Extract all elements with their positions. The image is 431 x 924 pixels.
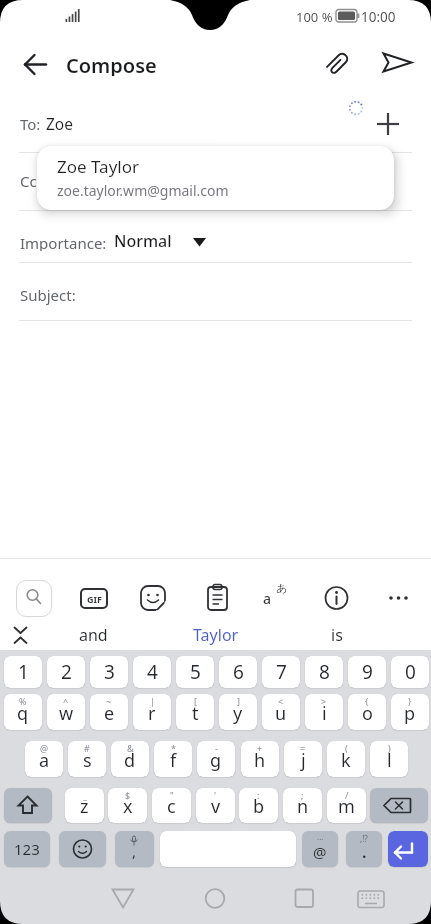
- button[interactable]: 123: [4, 831, 50, 867]
- staticText: 3: [104, 659, 115, 685]
- button[interactable]: @: [25, 741, 63, 777]
- button[interactable]: 1: [4, 656, 42, 688]
- button[interactable]: [260, 580, 296, 617]
- button[interactable]: [380, 580, 416, 617]
- button[interactable]: -: [197, 741, 235, 777]
- button[interactable]: [59, 831, 106, 867]
- button[interactable]: ': [196, 788, 235, 823]
- button[interactable]: +: [241, 741, 279, 777]
- button[interactable]: 0: [391, 656, 429, 688]
- staticText: GIF: [87, 593, 102, 605]
- button[interactable]: $: [108, 788, 147, 823]
- button[interactable]: ): [370, 741, 408, 777]
- button[interactable]: and: [60, 623, 126, 647]
- staticText: o: [362, 701, 373, 726]
- staticText: 123: [14, 839, 40, 859]
- button[interactable]: &: [111, 741, 149, 777]
- button[interactable]: (: [327, 741, 365, 777]
- button[interactable]: {: [348, 694, 386, 730]
- button[interactable]: [370, 788, 428, 823]
- button[interactable]: [103, 880, 143, 918]
- button[interactable]: ...: [302, 831, 338, 867]
- staticText: Compose: [66, 52, 157, 76]
- button[interactable]: 7: [262, 656, 300, 688]
- button[interactable]: <: [262, 694, 300, 730]
- button[interactable]: 4: [133, 656, 171, 688]
- staticText: x: [123, 794, 133, 819]
- button[interactable]: [135, 580, 171, 617]
- button[interactable]: }: [391, 694, 429, 730]
- staticText: j: [301, 748, 306, 773]
- button[interactable]: ,: [115, 831, 154, 867]
- button[interactable]: 5: [176, 656, 214, 688]
- button[interactable]: [15, 580, 51, 617]
- staticText: f: [170, 748, 177, 773]
- button[interactable]: [16, 580, 52, 617]
- staticText: 0: [405, 659, 416, 685]
- staticText: &: [127, 742, 134, 754]
- button[interactable]: ^: [47, 694, 85, 730]
- button[interactable]: [388, 831, 428, 867]
- button[interactable]: [16, 48, 52, 82]
- button[interactable]: 6: [219, 656, 257, 688]
- staticText: Cc/Bcc:: [20, 171, 38, 191]
- staticText: w: [59, 701, 74, 726]
- staticText: h: [254, 748, 266, 773]
- button[interactable]: [195, 880, 235, 918]
- button[interactable]: :: [239, 788, 278, 823]
- staticText: v: [211, 794, 221, 819]
- staticText: p: [404, 701, 416, 726]
- staticText: m: [338, 794, 355, 819]
- button[interactable]: GIF: [80, 588, 108, 609]
- button[interactable]: Zoe Taylor: [37, 146, 394, 210]
- staticText: ]: [237, 695, 240, 707]
- button[interactable]: ~: [90, 694, 128, 730]
- button[interactable]: /: [327, 788, 366, 823]
- button[interactable]: 9: [348, 656, 386, 688]
- button[interactable]: Normal: [114, 230, 184, 252]
- button[interactable]: [76, 580, 112, 617]
- staticText: r: [148, 701, 156, 726]
- button[interactable]: 3: [90, 656, 128, 688]
- staticText: Zoe Taylor: [57, 155, 140, 178]
- staticText: l: [387, 748, 392, 773]
- staticText: ": [170, 789, 174, 801]
- button[interactable]: Taylor: [180, 623, 252, 647]
- button[interactable]: [: [176, 694, 214, 730]
- button[interactable]: ;: [283, 788, 322, 823]
- button[interactable]: |: [133, 694, 171, 730]
- button[interactable]: [378, 46, 416, 80]
- button[interactable]: [318, 580, 354, 617]
- button[interactable]: _: [65, 788, 104, 823]
- button[interactable]: [370, 106, 410, 142]
- button[interactable]: ]: [219, 694, 257, 730]
- button[interactable]: is: [310, 623, 364, 647]
- button[interactable]: [8, 622, 36, 648]
- button[interactable]: #: [68, 741, 106, 777]
- button[interactable]: [284, 880, 324, 918]
- staticText: s: [83, 748, 92, 773]
- button[interactable]: [160, 831, 296, 867]
- button[interactable]: [4, 788, 52, 823]
- button[interactable]: >: [305, 694, 343, 730]
- button[interactable]: *: [154, 741, 192, 777]
- staticText: Normal: [114, 230, 172, 252]
- staticText: a: [263, 589, 272, 607]
- button[interactable]: %: [4, 694, 42, 730]
- button[interactable]: 8: [305, 656, 343, 688]
- staticText: %: [19, 695, 27, 707]
- button[interactable]: [351, 880, 391, 918]
- button[interactable]: ": [152, 788, 191, 823]
- staticText: {: [365, 695, 369, 707]
- button[interactable]: [199, 580, 235, 617]
- button[interactable]: =: [284, 741, 322, 777]
- staticText: and: [79, 624, 108, 646]
- button[interactable]: ,!?: [346, 831, 382, 867]
- button[interactable]: 2: [47, 656, 85, 688]
- staticText: ): [388, 742, 391, 754]
- button[interactable]: [320, 46, 356, 80]
- staticText: -: [215, 742, 218, 754]
- staticText: [: [194, 695, 197, 707]
- staticText: <: [278, 695, 284, 707]
- staticText: (: [345, 742, 348, 754]
